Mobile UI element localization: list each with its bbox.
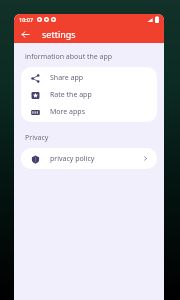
staticText: settings (42, 28, 76, 40)
button[interactable]: More apps (21, 103, 157, 120)
staticText: Privacy (25, 133, 49, 143)
staticText: information about the app (25, 52, 113, 62)
button[interactable]: privacy policy (21, 150, 157, 167)
button[interactable]: Rate the app (21, 86, 157, 103)
button[interactable]: Back (17, 26, 33, 42)
button[interactable]: Share app (21, 69, 157, 86)
staticText: privacy policy (50, 154, 142, 164)
staticText: Share app (50, 73, 149, 83)
staticText: 10:07 (19, 16, 34, 23)
staticText: Rate the app (50, 90, 149, 100)
staticText: More apps (50, 107, 149, 117)
